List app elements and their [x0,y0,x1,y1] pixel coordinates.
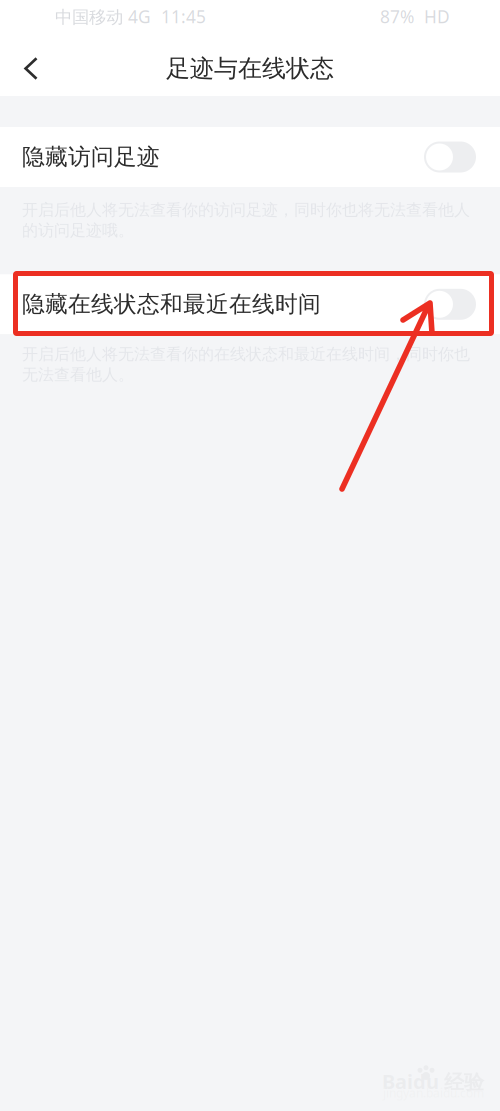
staticText: Baidu 经验 [382,1068,484,1095]
staticText: 开启后他人将无法查看你的访问足迹，同时你也将无法查看他人的访问足迹哦。 [22,200,470,240]
staticText: 87% HD [380,5,450,28]
button[interactable]: 隐藏访问足迹 [0,127,500,187]
staticText: 隐藏在线状态和最近在线时间 [22,290,321,318]
button[interactable]: 隐藏在线状态和最近在线时间 [0,274,500,334]
button[interactable]: Back [7,44,55,92]
staticText: 中国移动 4G 11:45 [55,5,206,28]
staticText: 足迹与在线状态 [166,54,334,83]
staticText: 开启后他人将无法查看你的在线状态和最近在线时间，同时你也无法查看他人。 [22,344,470,385]
staticText: 隐藏访问足迹 [22,143,160,171]
